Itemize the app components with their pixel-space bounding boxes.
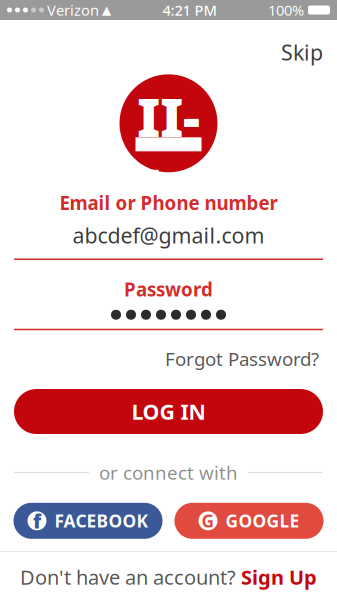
button[interactable]: LOG IN (14, 389, 323, 434)
staticText: 100% (268, 0, 304, 20)
staticText: LOG IN (131, 397, 205, 426)
staticText: f (33, 507, 41, 534)
staticText: Skip (281, 38, 323, 66)
button[interactable]: Skip (275, 34, 329, 70)
staticText: Sign Up (241, 564, 317, 590)
staticText: FACEBOOK (54, 509, 148, 532)
staticText: abcdef@gmail.com (72, 221, 264, 249)
staticText: Email or Phone number (59, 190, 277, 215)
button[interactable]: Forgot Password? (161, 342, 323, 375)
button[interactable]: Don't have an account? (0, 552, 337, 602)
button[interactable]: f (13, 503, 162, 539)
staticText: Don't have an account? (20, 564, 236, 590)
staticText: Forgot Password? (165, 346, 319, 371)
staticText: Verizon (47, 0, 99, 20)
staticText: or connect with (99, 460, 238, 485)
staticText: Password (124, 277, 213, 302)
staticText: ▲ (102, 3, 111, 17)
staticText: GOOGLE (225, 509, 299, 532)
button[interactable]: G (174, 503, 323, 539)
staticText: G (201, 509, 214, 532)
staticText: 4:21 PM (162, 0, 216, 20)
staticText: SIII (137, 10, 200, 223)
